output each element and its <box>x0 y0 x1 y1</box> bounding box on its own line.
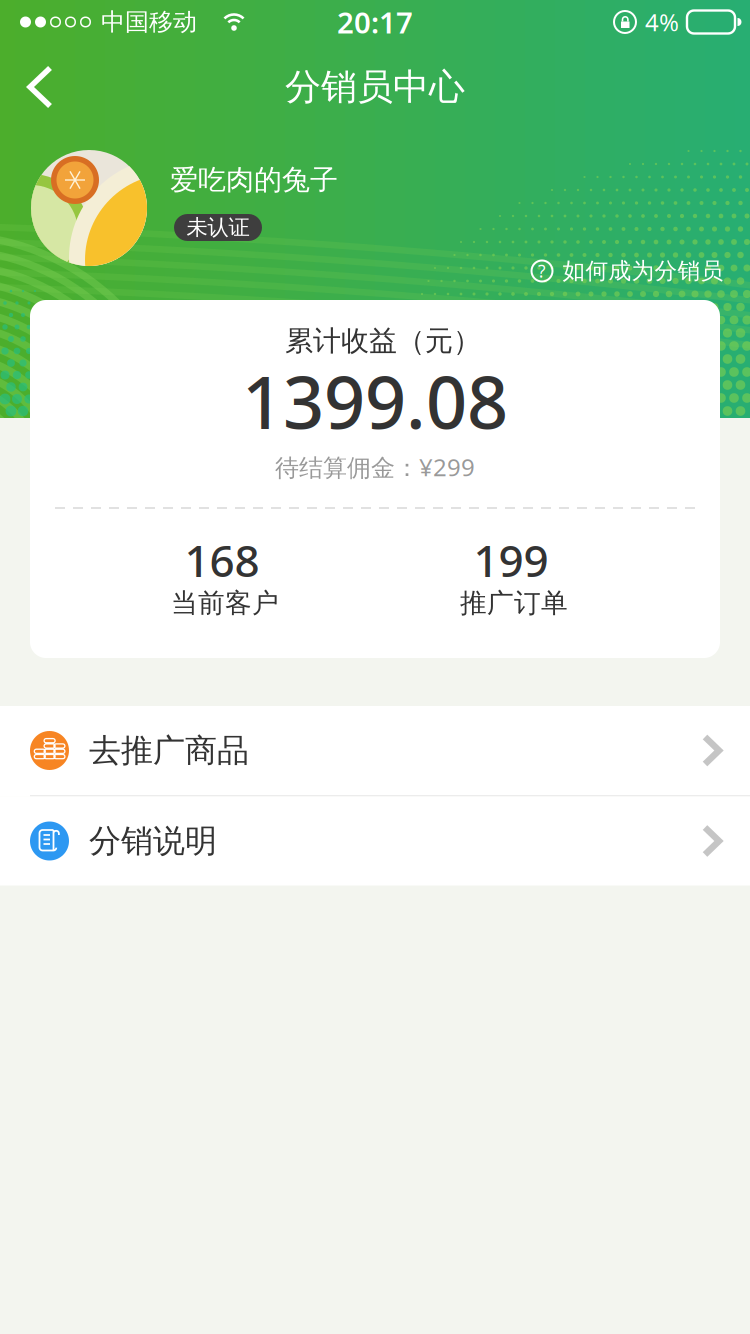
staticText: 中国移动 <box>101 7 197 37</box>
staticText: 168 <box>184 531 259 589</box>
staticText: ? <box>538 259 546 282</box>
staticText: 分销说明 <box>89 821 217 861</box>
staticText: 20:17 <box>337 2 413 41</box>
staticText: 分销员中心 <box>285 65 465 109</box>
staticText: 199 <box>473 531 548 589</box>
staticText: 去推广商品 <box>89 731 249 770</box>
staticText: 1399.08 <box>242 353 508 449</box>
staticText: 当前客户 <box>171 587 279 619</box>
staticText: 爱吃肉的兔子 <box>170 163 338 197</box>
staticText: 4% <box>645 6 679 38</box>
staticText: 累计收益（元） <box>285 324 481 358</box>
staticText: 推广订单 <box>460 587 568 619</box>
button[interactable]: Back <box>18 61 70 113</box>
button[interactable]: ? <box>530 257 723 285</box>
staticText: 未认证 <box>186 214 249 241</box>
button[interactable]: 去推广商品 <box>0 706 750 795</box>
staticText: 如何成为分销员 <box>562 257 723 285</box>
button[interactable]: 分销说明 <box>0 796 750 885</box>
staticText: 待结算佣金：¥299 <box>275 451 475 483</box>
